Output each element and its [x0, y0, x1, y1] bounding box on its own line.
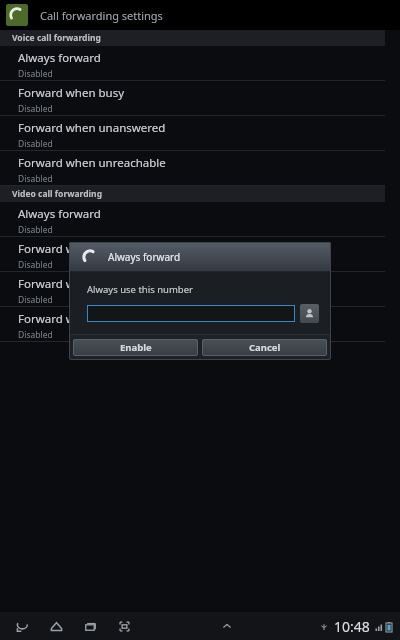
- button[interactable]: Cancel: [202, 339, 327, 356]
- staticText: 10:48: [334, 617, 370, 636]
- staticText: Always forward: [108, 250, 181, 264]
- staticText: Disabled: [18, 224, 53, 236]
- staticText: Forward when busy: [18, 241, 125, 257]
- button[interactable]: Enable: [73, 339, 198, 356]
- staticText: Video call forwarding: [12, 188, 102, 200]
- button[interactable]: Status: [319, 617, 392, 636]
- staticText: Cancel: [249, 341, 281, 354]
- button[interactable]: Forward when unanswered: [0, 116, 400, 151]
- button[interactable]: Always forward: [0, 202, 400, 237]
- staticText: Disabled: [18, 329, 53, 341]
- staticText: Enable: [120, 341, 152, 354]
- button[interactable]: Recents: [78, 614, 102, 638]
- staticText: Disabled: [18, 294, 53, 306]
- staticText: Disabled: [18, 138, 53, 150]
- staticText: Disabled: [18, 68, 53, 80]
- button[interactable]: Forward when busy: [0, 237, 400, 272]
- button[interactable]: Home: [44, 614, 68, 638]
- staticText: Forward when unreachable: [18, 311, 166, 327]
- button[interactable]: Forward when busy: [0, 81, 400, 116]
- staticText: Disabled: [18, 173, 53, 185]
- button[interactable]: Phone number field: [87, 305, 295, 322]
- staticText: Always forward: [18, 206, 101, 222]
- staticText: Always use this number: [87, 283, 193, 296]
- button[interactable]: App icon: [6, 4, 28, 26]
- staticText: Always forward: [18, 50, 101, 66]
- staticText: Disabled: [18, 103, 53, 115]
- button[interactable]: Pick contact: [300, 304, 319, 323]
- button[interactable]: Notifications: [217, 616, 237, 636]
- staticText: Forward when unreachable: [18, 155, 166, 171]
- button[interactable]: Forward when unreachable: [0, 307, 400, 342]
- button[interactable]: Back: [10, 614, 34, 638]
- staticText: Call forwarding settings: [40, 8, 163, 23]
- button[interactable]: Forward when unreachable: [0, 151, 400, 186]
- button[interactable]: Always forward: [0, 46, 400, 81]
- button[interactable]: Forward when unanswered: [0, 272, 400, 307]
- staticText: Forward when busy: [18, 85, 125, 101]
- staticText: Forward when unanswered: [18, 276, 166, 292]
- staticText: Disabled: [18, 259, 53, 271]
- staticText: Voice call forwarding: [12, 32, 101, 44]
- staticText: Forward when unanswered: [18, 120, 166, 136]
- button[interactable]: Screenshot: [112, 614, 136, 638]
